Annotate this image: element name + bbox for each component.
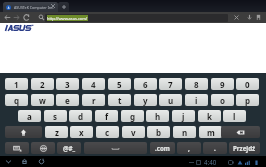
button[interactable]: Backspace: [221, 126, 260, 138]
button[interactable]: l: [223, 110, 246, 122]
button[interactable]: 1: [5, 78, 28, 90]
button[interactable]: u: [159, 94, 182, 106]
staticText: ASUSTeK Computer Inc.: [14, 5, 54, 10]
button[interactable]: Back: [2, 12, 12, 23]
button[interactable]: s: [44, 110, 67, 122]
staticText: v: [131, 127, 136, 138]
button[interactable]: ,: [177, 142, 201, 154]
button[interactable]: i: [185, 94, 208, 106]
button[interactable]: Back: [3, 156, 14, 167]
button[interactable]: x: [70, 126, 93, 138]
staticText: 6: [143, 79, 148, 90]
button[interactable]: 5: [108, 78, 131, 90]
button[interactable]: Download: [244, 12, 254, 23]
staticText: 5: [117, 79, 122, 90]
button[interactable]: t: [108, 94, 131, 106]
button[interactable]: w: [31, 94, 54, 106]
staticText: d: [78, 111, 84, 122]
staticText: h: [155, 111, 161, 122]
button[interactable]: j: [172, 110, 195, 122]
staticText: o: [220, 95, 225, 106]
button[interactable]: Shift: [5, 126, 42, 138]
button[interactable]: p: [236, 94, 259, 106]
button[interactable]: b: [147, 126, 170, 138]
staticText: n: [182, 127, 188, 138]
staticText: f: [105, 111, 109, 122]
button[interactable]: Forward: [11, 12, 21, 23]
staticText: e: [65, 95, 70, 106]
staticText: 2: [40, 79, 45, 90]
button[interactable]: 7: [159, 78, 182, 90]
button[interactable]: o: [211, 94, 234, 106]
button[interactable]: a: [18, 110, 41, 122]
button[interactable]: r: [82, 94, 105, 106]
button[interactable]: Search: [36, 12, 46, 23]
staticText: y: [143, 95, 148, 106]
staticText: q: [14, 95, 20, 106]
staticText: w: [39, 95, 46, 106]
button[interactable]: Reload: [21, 12, 31, 23]
button[interactable]: g: [121, 110, 144, 122]
staticText: z: [55, 127, 59, 138]
button[interactable]: http://www.asus.com/: [45, 14, 228, 22]
button[interactable]: y: [134, 94, 157, 106]
button[interactable]: 6: [134, 78, 157, 90]
staticText: x: [79, 127, 84, 138]
staticText: g: [130, 111, 136, 122]
staticText: http://www.asus.com/: [47, 16, 88, 21]
button[interactable]: ASUSTeK Computer Inc.: [3, 2, 58, 12]
staticText: m: [207, 127, 215, 138]
button[interactable]: h: [146, 110, 169, 122]
staticText: u: [168, 95, 174, 106]
staticText: i: [195, 95, 198, 106]
staticText: l: [233, 111, 236, 122]
button[interactable]: Bookmarks: [253, 12, 263, 23]
button[interactable]: q: [5, 94, 28, 106]
button[interactable]: c: [96, 126, 119, 138]
staticText: ,: [188, 144, 190, 152]
button[interactable]: Przejdź: [229, 142, 260, 154]
button[interactable]: New tab: [58, 2, 69, 12]
button[interactable]: v: [122, 126, 145, 138]
button[interactable]: m: [199, 126, 222, 138]
button[interactable]: Close tab: [49, 2, 57, 10]
button[interactable]: Switch keyboard: [5, 142, 29, 154]
staticText: 4: [91, 79, 96, 90]
button[interactable]: Space: [84, 142, 147, 154]
staticText: .: [214, 144, 216, 152]
button[interactable]: e: [56, 94, 79, 106]
button[interactable]: n: [173, 126, 196, 138]
button[interactable]: 4: [82, 78, 105, 90]
staticText: .com: [155, 144, 170, 152]
button[interactable]: @#_: [57, 142, 81, 154]
staticText: 3: [65, 79, 70, 90]
staticText: a: [27, 111, 32, 122]
button[interactable]: 2: [31, 78, 54, 90]
button[interactable]: 8: [185, 78, 208, 90]
button[interactable]: 9: [211, 78, 234, 90]
button[interactable]: Home: [19, 156, 30, 167]
button[interactable]: .com: [150, 142, 175, 154]
staticText: 4:40: [204, 158, 217, 166]
staticText: Przejdź: [233, 144, 256, 152]
button[interactable]: k: [198, 110, 221, 122]
button[interactable]: Recents: [36, 156, 47, 167]
button[interactable]: z: [45, 126, 68, 138]
button[interactable]: Language: [31, 142, 55, 154]
button[interactable]: 0: [236, 78, 259, 90]
staticText: 1: [14, 79, 19, 90]
staticText: t: [118, 95, 122, 106]
staticText: p: [245, 95, 251, 106]
staticText: 0: [245, 79, 250, 90]
staticText: s: [53, 111, 58, 122]
staticText: 9: [220, 79, 225, 90]
staticText: r: [92, 95, 96, 106]
button[interactable]: 3: [56, 78, 79, 90]
button[interactable]: d: [69, 110, 92, 122]
button[interactable]: Stop: [231, 12, 241, 23]
staticText: j: [182, 111, 185, 122]
button[interactable]: f: [95, 110, 118, 122]
staticText: k: [207, 111, 212, 122]
staticText: b: [156, 127, 162, 138]
button[interactable]: .: [203, 142, 227, 154]
